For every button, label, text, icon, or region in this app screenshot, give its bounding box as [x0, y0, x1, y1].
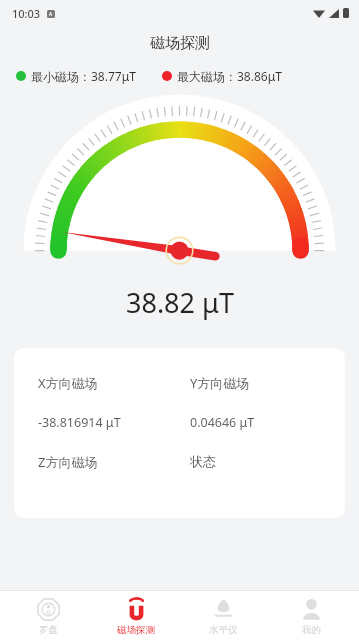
staticText: X方向磁场 [38, 374, 98, 392]
staticText: 磁场探测 [117, 624, 155, 636]
button[interactable]: 水平仪 [184, 594, 262, 640]
staticText: 最小磁场：38.77μT [31, 68, 136, 84]
button[interactable]: 磁场探测 [97, 594, 175, 640]
staticText: 我的 [302, 624, 321, 636]
other: 磁场探测 [125, 598, 148, 621]
staticText: A [49, 11, 53, 18]
button[interactable]: 罗盘 [9, 594, 87, 640]
staticText: Z方向磁场 [38, 453, 98, 471]
staticText: 10:03 [12, 6, 41, 21]
staticText: 状态 [190, 453, 216, 469]
other: 我的 [300, 598, 323, 621]
staticText: 0.04646 μT [190, 414, 255, 431]
other: 水平仪 [212, 598, 235, 621]
button[interactable]: X方向磁场 [14, 348, 345, 518]
other: 罗盘 [37, 598, 60, 621]
staticText: 38.82 μT [126, 284, 234, 321]
staticText: 最大磁场：38.86μT [177, 68, 282, 84]
staticText: 水平仪 [209, 624, 238, 636]
staticText: 罗盘 [39, 624, 58, 636]
button[interactable]: 我的 [272, 594, 350, 640]
staticText: -38.816914 μT [38, 414, 121, 431]
staticText: Y方向磁场 [190, 374, 250, 392]
staticText: 磁场探测 [150, 34, 210, 53]
